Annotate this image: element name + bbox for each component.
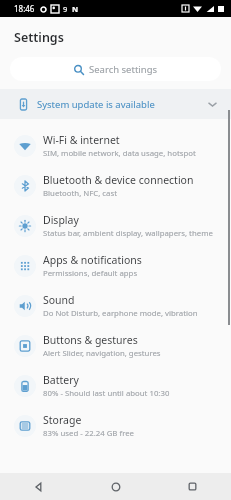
- button[interactable]: Home: [77, 473, 154, 500]
- button[interactable]: Battery: [0, 366, 231, 406]
- staticText: Storage: [43, 413, 82, 427]
- staticText: Settings: [14, 29, 64, 46]
- button[interactable]: Wi-Fi & internet: [0, 126, 231, 166]
- staticText: Permissions, default apps: [43, 268, 138, 279]
- staticText: System update is available: [37, 98, 155, 111]
- button[interactable]: Buttons & gestures: [0, 326, 231, 366]
- staticText: Search settings: [89, 63, 158, 76]
- staticText: Buttons & gestures: [43, 333, 138, 347]
- staticText: Alert Slider, navigation, gestures: [43, 348, 161, 359]
- staticText: 83% used - 22.24 GB free: [43, 428, 135, 439]
- button[interactable]: Apps & notifications: [0, 246, 231, 286]
- staticText: SIM, mobile network, data usage, hotspot: [43, 148, 196, 159]
- staticText: Bluetooth & device connection: [43, 173, 194, 187]
- button[interactable]: Recent apps: [154, 473, 231, 500]
- button[interactable]: Search settings: [10, 57, 221, 81]
- staticText: 18:46: [14, 3, 35, 14]
- staticText: N: [72, 4, 79, 14]
- staticText: 80% - Should last until about 10:30: [43, 388, 170, 399]
- button[interactable]: Display: [0, 206, 231, 246]
- button[interactable]: Storage: [0, 406, 231, 446]
- button[interactable]: Bluetooth & device connection: [0, 166, 231, 206]
- staticText: Bluetooth, NFC, cast: [43, 188, 117, 199]
- button[interactable]: Back: [0, 473, 77, 500]
- staticText: 9: [63, 4, 68, 14]
- staticText: Battery: [43, 373, 79, 387]
- button[interactable]: System update is available: [0, 89, 231, 119]
- staticText: Sound: [43, 293, 75, 307]
- staticText: Do Not Disturb, earphone mode, vibration: [43, 308, 198, 319]
- staticText: Display: [43, 213, 79, 227]
- staticText: Apps & notifications: [43, 253, 142, 267]
- button[interactable]: Expand system update: [205, 97, 219, 111]
- staticText: Wi-Fi & internet: [43, 133, 120, 147]
- button[interactable]: Sound: [0, 286, 231, 326]
- staticText: Status bar, ambient display, wallpapers,…: [43, 228, 213, 239]
